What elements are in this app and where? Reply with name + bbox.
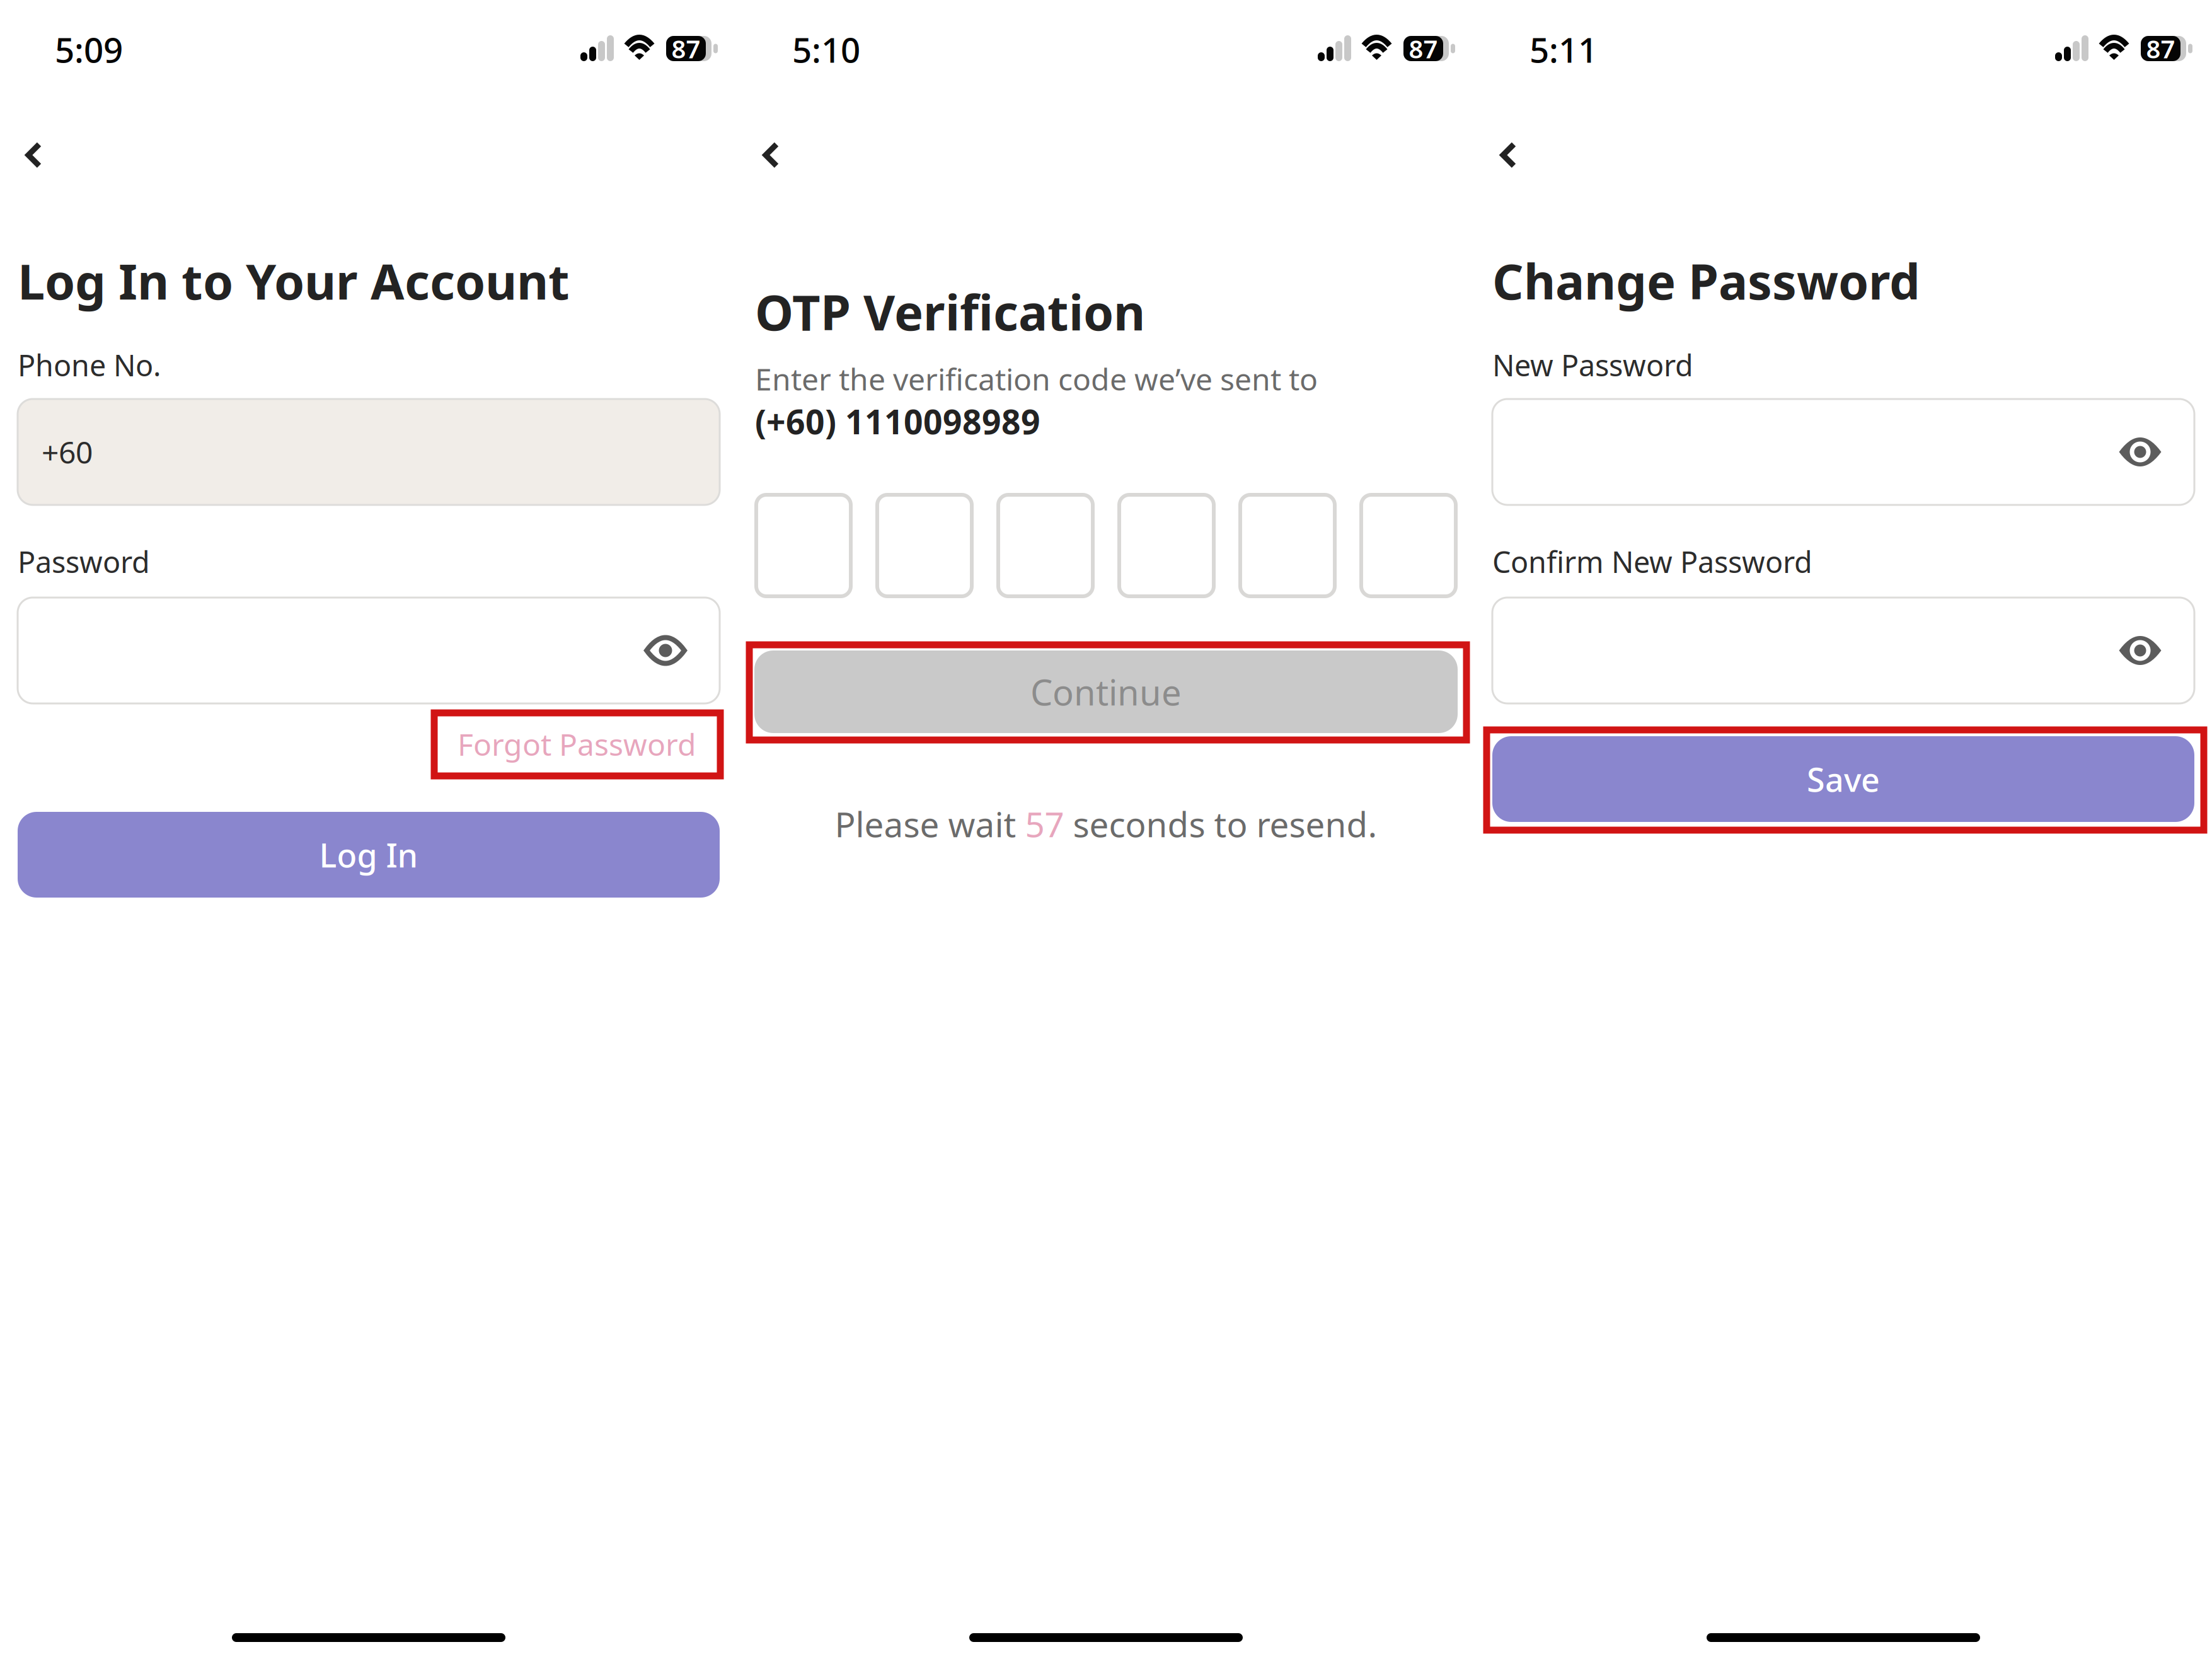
staticText: New Password bbox=[1492, 345, 1693, 384]
staticText: Continue bbox=[1030, 668, 1182, 715]
staticText: Forgot Password bbox=[458, 724, 696, 764]
button[interactable]: Back bbox=[744, 130, 797, 180]
staticText: 87 bbox=[2146, 32, 2175, 65]
staticText: Enter the verification code we’ve sent t… bbox=[755, 359, 1318, 399]
button[interactable]: Back bbox=[7, 130, 60, 180]
button[interactable]: Forgot Password bbox=[431, 710, 723, 778]
staticText: 5:10 bbox=[792, 26, 860, 72]
staticText: 5:09 bbox=[55, 26, 123, 72]
staticText: Save bbox=[1807, 757, 1880, 801]
staticText: 87 bbox=[1409, 32, 1438, 65]
staticText: seconds to resend. bbox=[1064, 801, 1377, 847]
staticText: 57 bbox=[1025, 801, 1064, 847]
staticText: Please wait bbox=[835, 801, 1025, 847]
button[interactable]: Back bbox=[1482, 130, 1535, 180]
button[interactable]: Continue bbox=[754, 650, 1458, 733]
button[interactable]: Show password bbox=[2102, 599, 2178, 702]
staticText: +60 bbox=[42, 432, 93, 472]
button[interactable]: Show password bbox=[2102, 400, 2178, 504]
button[interactable]: Log In bbox=[18, 812, 720, 898]
staticText: Log In bbox=[319, 833, 418, 877]
button[interactable]: Save bbox=[1492, 736, 2194, 822]
staticText: Log In to Your Account bbox=[18, 248, 570, 313]
staticText: 5:11 bbox=[1529, 26, 1598, 72]
staticText: 87 bbox=[671, 32, 700, 65]
staticText: Password bbox=[18, 542, 150, 581]
staticText: Confirm New Password bbox=[1492, 542, 1812, 581]
staticText: (+60) 1110098989 bbox=[755, 399, 1040, 444]
staticText: Change Password bbox=[1492, 248, 1920, 313]
button[interactable]: Show password bbox=[628, 599, 703, 702]
staticText: Phone No. bbox=[18, 345, 161, 384]
staticText: OTP Verification bbox=[755, 279, 1145, 344]
